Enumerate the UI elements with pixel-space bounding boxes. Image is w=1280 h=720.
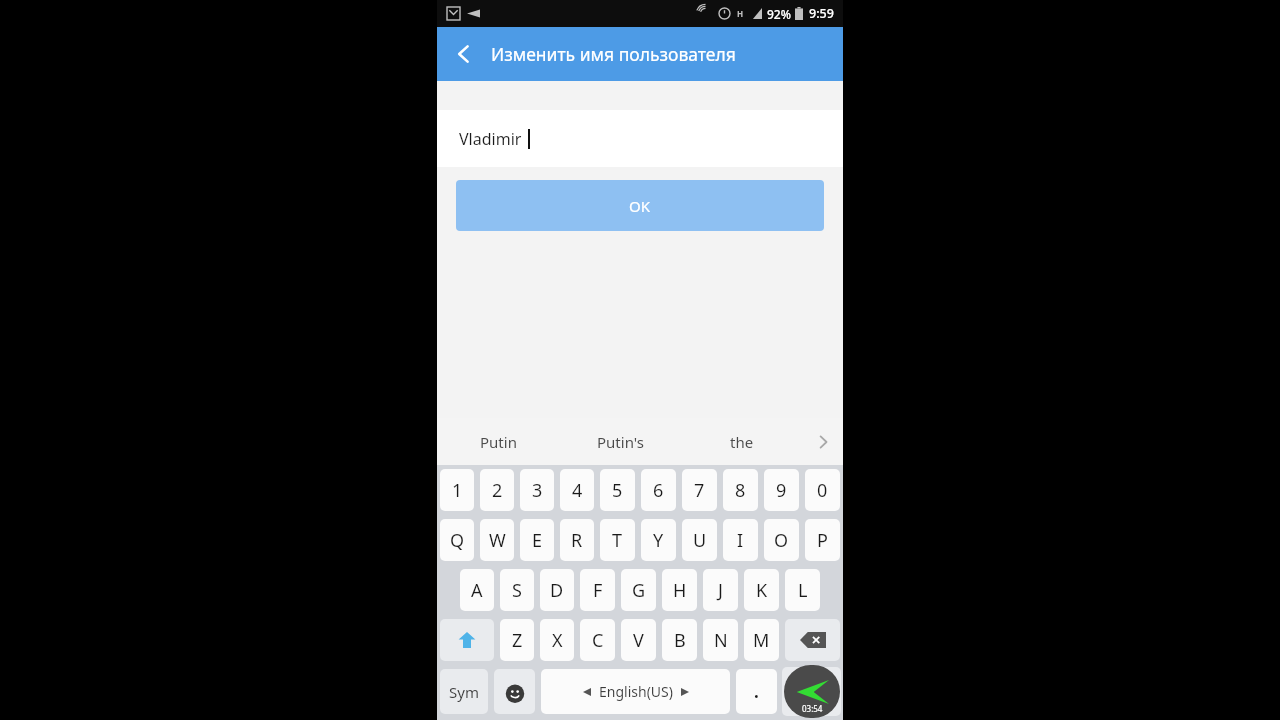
button[interactable]: R xyxy=(560,519,594,561)
button[interactable]: B xyxy=(662,619,697,661)
button[interactable]: 8 xyxy=(723,469,758,511)
staticText: T xyxy=(612,528,623,553)
button[interactable]: Back xyxy=(437,27,491,81)
staticText: U xyxy=(693,528,707,553)
staticText: 4 xyxy=(572,478,583,503)
staticText: 8 xyxy=(735,478,746,503)
button[interactable]: 4 xyxy=(560,469,594,511)
button[interactable]: Vladimir xyxy=(437,110,843,167)
staticText: H xyxy=(737,8,744,19)
button[interactable]: S xyxy=(500,569,534,611)
button[interactable]: E xyxy=(520,519,554,561)
staticText: 1 xyxy=(452,478,463,503)
button[interactable]: Sym xyxy=(440,669,488,714)
staticText: W xyxy=(489,528,506,553)
staticText: 92% xyxy=(767,6,791,22)
button[interactable]: 7 xyxy=(682,469,717,511)
staticText: the xyxy=(730,432,754,452)
staticText: 3 xyxy=(532,478,543,503)
staticText: Изменить имя пользователя xyxy=(491,42,736,66)
staticText: F xyxy=(593,578,603,603)
button[interactable]: 5 xyxy=(600,469,635,511)
staticText: L xyxy=(798,578,808,603)
staticText: 7 xyxy=(694,478,705,503)
staticText: C xyxy=(592,628,604,653)
staticText: Vladimir xyxy=(459,128,522,150)
button[interactable]: 6 xyxy=(641,469,676,511)
staticText: R xyxy=(571,528,583,553)
staticText: M xyxy=(753,628,770,653)
staticText: Sym xyxy=(449,682,479,702)
button[interactable]: O xyxy=(764,519,799,561)
button[interactable]: M xyxy=(744,619,779,661)
staticText: Putin xyxy=(480,432,517,452)
button[interactable]: G xyxy=(621,569,656,611)
button[interactable]: Q xyxy=(440,519,474,561)
button[interactable]: I xyxy=(723,519,758,561)
staticText: 5 xyxy=(612,478,623,503)
button[interactable]: Backspace xyxy=(785,619,840,661)
button[interactable]: 0 xyxy=(805,469,840,511)
staticText: Y xyxy=(653,528,664,553)
staticText: N xyxy=(714,628,728,653)
button[interactable]: 3 xyxy=(520,469,554,511)
staticText: OK xyxy=(802,682,822,701)
staticText: J xyxy=(718,578,723,603)
staticText: H xyxy=(673,578,687,603)
staticText: . xyxy=(754,680,759,703)
button[interactable]: N xyxy=(703,619,738,661)
staticText: G xyxy=(632,578,646,603)
button[interactable]: 2 xyxy=(480,469,514,511)
staticText: O xyxy=(774,528,789,553)
staticText: 0 xyxy=(817,478,828,503)
staticText: 9:59 xyxy=(809,5,834,22)
staticText: 6 xyxy=(653,478,664,503)
staticText: Putin's xyxy=(597,432,644,452)
button[interactable]: F xyxy=(580,569,615,611)
button[interactable]: T xyxy=(600,519,635,561)
button[interactable]: 1 xyxy=(440,469,474,511)
button[interactable]: OK xyxy=(456,180,824,231)
staticText: D xyxy=(550,578,564,603)
staticText: 03:54 xyxy=(802,703,823,714)
button[interactable]: X xyxy=(540,619,574,661)
staticText: Q xyxy=(450,528,465,553)
staticText: OK xyxy=(629,196,651,216)
button[interactable]: . xyxy=(736,669,777,714)
button[interactable]: A xyxy=(460,569,494,611)
button[interactable]: C xyxy=(580,619,615,661)
button[interactable]: Emoji xyxy=(494,669,535,714)
button[interactable]: P xyxy=(805,519,840,561)
button[interactable]: Z xyxy=(500,619,534,661)
button[interactable]: Putin xyxy=(437,418,559,465)
button[interactable]: L xyxy=(785,569,820,611)
staticText: Z xyxy=(512,628,523,653)
button[interactable]: J xyxy=(703,569,738,611)
staticText: A xyxy=(471,578,483,603)
staticText: K xyxy=(756,578,768,603)
staticText: I xyxy=(737,528,744,553)
staticText: X xyxy=(552,628,563,653)
button[interactable]: W xyxy=(480,519,514,561)
button[interactable]: 9 xyxy=(764,469,799,511)
staticText: 9 xyxy=(776,478,787,503)
button[interactable]: U xyxy=(682,519,717,561)
staticText: English(US) xyxy=(599,682,673,701)
staticText: B xyxy=(674,628,686,653)
staticText: S xyxy=(512,578,522,603)
staticText: E xyxy=(532,528,543,553)
button[interactable]: Shift xyxy=(440,619,494,661)
button[interactable]: OK xyxy=(782,667,841,716)
staticText: 2 xyxy=(492,478,503,503)
button[interactable]: K xyxy=(744,569,779,611)
button[interactable]: H xyxy=(662,569,697,611)
button[interactable]: Putin's xyxy=(559,418,681,465)
button[interactable]: More suggestions xyxy=(803,418,843,465)
button[interactable]: Y xyxy=(641,519,676,561)
staticText: P xyxy=(817,528,828,553)
staticText: V xyxy=(633,628,644,653)
button[interactable]: D xyxy=(540,569,574,611)
button[interactable]: Space xyxy=(541,669,730,714)
button[interactable]: V xyxy=(621,619,656,661)
button[interactable]: the xyxy=(681,418,803,465)
